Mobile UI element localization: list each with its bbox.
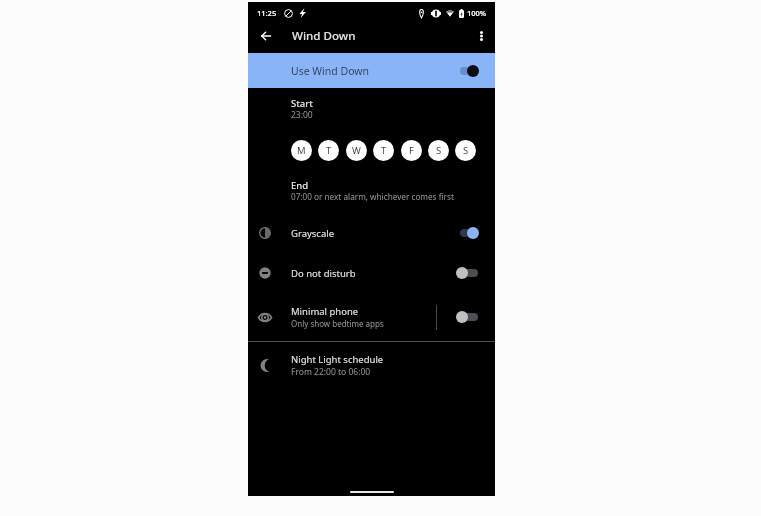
- button[interactable]: Navigate up: [254, 24, 278, 47]
- staticText: S: [436, 144, 442, 157]
- staticText: S: [463, 144, 469, 157]
- staticText: F: [409, 144, 414, 157]
- staticText: 23:00: [291, 109, 313, 121]
- button[interactable]: Toggle Grayscale: [456, 226, 480, 240]
- button[interactable]: S: [428, 140, 449, 161]
- staticText: From 22:00 to 06:00: [291, 366, 371, 378]
- button[interactable]: Grayscale: [248, 213, 495, 253]
- button[interactable]: Night Light schedule: [248, 345, 495, 385]
- button[interactable]: Use Wind Down: [248, 53, 495, 88]
- staticText: Wind Down: [292, 28, 356, 44]
- staticText: Only show bedtime apps: [291, 318, 384, 329]
- button[interactable]: Minimal phone: [248, 297, 495, 337]
- staticText: M: [297, 144, 306, 157]
- button[interactable]: S: [455, 140, 476, 161]
- button[interactable]: Use Wind Down toggle: [456, 64, 480, 78]
- staticText: Grayscale: [291, 227, 335, 240]
- button[interactable]: Toggle Minimal phone: [456, 310, 480, 324]
- staticText: Minimal phone: [291, 305, 359, 318]
- staticText: Night Light schedule: [291, 353, 384, 366]
- button[interactable]: Toggle Do not disturb: [456, 266, 480, 280]
- staticText: W: [352, 144, 361, 157]
- button[interactable]: T: [318, 140, 339, 161]
- button[interactable]: Do not disturb: [248, 253, 495, 293]
- staticText: Do not disturb: [291, 267, 356, 280]
- button[interactable]: Start: [248, 97, 495, 122]
- staticText: Use Wind Down: [291, 64, 370, 78]
- button[interactable]: End: [248, 179, 495, 203]
- staticText: 11:25: [257, 8, 277, 18]
- button[interactable]: W: [346, 140, 367, 161]
- button[interactable]: More options: [469, 24, 493, 47]
- button[interactable]: F: [401, 140, 422, 161]
- staticText: T: [326, 144, 332, 157]
- staticText: End: [291, 179, 309, 192]
- staticText: Start: [291, 97, 313, 110]
- staticText: T: [381, 144, 387, 157]
- staticText: 07:00 or next alarm, whichever comes fir…: [291, 191, 454, 202]
- staticText: 100%: [467, 8, 487, 18]
- button[interactable]: M: [291, 140, 312, 161]
- button[interactable]: T: [373, 140, 394, 161]
